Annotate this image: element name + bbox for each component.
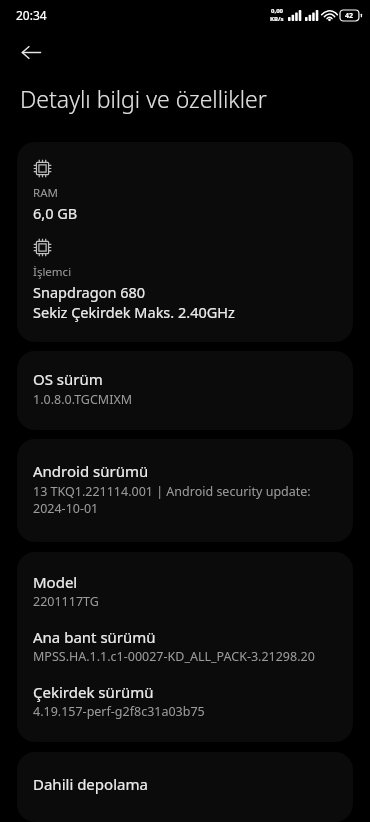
button[interactable]: OS sürüm: [17, 351, 353, 430]
staticText: Dahili depolama: [33, 774, 148, 794]
staticText: 2201117TG: [33, 593, 99, 610]
button[interactable]: RAM: [17, 142, 353, 342]
staticText: KB/s: [270, 15, 284, 23]
staticText: İşlemci: [33, 264, 72, 280]
staticText: RAM: [33, 185, 58, 201]
staticText: Ana bant sürümü: [33, 627, 156, 647]
button[interactable]: Android sürümü: [17, 439, 353, 542]
staticText: MPSS.HA.1.1.c1-00027-KD_ALL_PACK-3.21298…: [33, 648, 315, 665]
staticText: Çekirdek sürümü: [33, 682, 154, 702]
button[interactable]: Back: [9, 30, 53, 74]
staticText: Android sürümü: [33, 461, 149, 481]
staticText: Sekiz Çekirdek Maks. 2.40GHz: [33, 302, 235, 322]
staticText: OS sürüm: [33, 369, 103, 389]
staticText: 42: [345, 11, 354, 21]
staticText: 13 TKQ1.221114.001 | Android security up…: [33, 483, 311, 500]
staticText: 1.0.8.0.TGCMIXM: [33, 391, 133, 408]
staticText: 2024-10-01: [33, 500, 99, 517]
staticText: Model: [33, 572, 78, 592]
staticText: 20:34: [16, 7, 47, 23]
staticText: 6,0 GB: [33, 203, 78, 223]
staticText: 0,00: [271, 7, 284, 15]
button[interactable]: Model: [17, 552, 353, 742]
staticText: 4.19.157-perf-g2f8c31a03b75: [33, 703, 205, 720]
staticText: Detaylı bilgi ve özellikler: [20, 83, 267, 114]
button[interactable]: Dahili depolama: [17, 752, 353, 822]
staticText: Snapdragon 680: [33, 282, 146, 302]
